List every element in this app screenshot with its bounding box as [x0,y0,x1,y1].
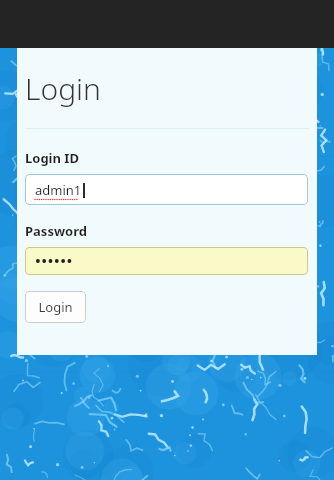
staticText: admin1 [35,181,82,199]
button[interactable]: admin1 [25,174,308,205]
staticText: Login ID [25,149,79,167]
staticText: Login [25,68,101,109]
staticText: Login [38,298,73,316]
staticText: Password [25,222,87,240]
button[interactable] [25,247,308,275]
button[interactable]: Login [25,291,86,323]
